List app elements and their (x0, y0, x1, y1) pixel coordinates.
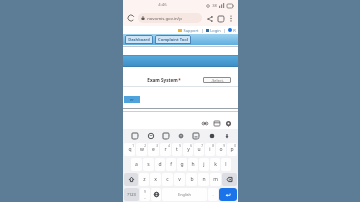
staticText: t (176, 146, 178, 153)
button[interactable]: t (172, 143, 182, 156)
button[interactable]: Shift (124, 173, 138, 186)
staticText: d (158, 161, 162, 168)
button[interactable]: er (124, 96, 140, 103)
staticText: 4:46 (158, 2, 167, 8)
button[interactable]: Complaint Tool (155, 35, 191, 44)
button[interactable]: Addresses (224, 119, 233, 128)
staticText: h (191, 161, 195, 168)
button[interactable]: Translate (191, 131, 200, 140)
button[interactable]: s (143, 158, 154, 171)
staticText: | (201, 28, 204, 33)
staticText: Support (183, 28, 199, 33)
staticText: Complaint Tool (158, 37, 188, 42)
staticText: x (154, 176, 157, 183)
button[interactable]: i (205, 143, 215, 156)
staticText: u (197, 146, 201, 153)
button[interactable]: 9 (140, 188, 150, 201)
staticText: Dashboard (128, 37, 150, 42)
button[interactable]: Payment methods (212, 119, 221, 128)
staticText: . (212, 192, 214, 198)
staticText: 9 (144, 190, 146, 194)
button[interactable]: c (162, 173, 173, 186)
button[interactable]: d (155, 158, 165, 171)
staticText: * (178, 77, 181, 83)
button[interactable]: z (139, 173, 149, 186)
button[interactable]: h (188, 158, 198, 171)
staticText: n (202, 176, 206, 183)
button[interactable]: f (166, 158, 176, 171)
staticText: y (187, 146, 190, 153)
staticText: 3 (156, 144, 158, 148)
button[interactable]: English (162, 188, 207, 201)
button[interactable]: Enter (219, 188, 237, 201)
button[interactable]: a (131, 158, 142, 171)
button[interactable]: r (160, 143, 171, 156)
staticText: b (190, 176, 194, 183)
button[interactable]: Change language (151, 188, 161, 201)
staticText: s (147, 161, 150, 168)
staticText: l (225, 161, 227, 168)
staticText: 9 (223, 144, 225, 148)
staticText: 8 (212, 144, 214, 148)
button[interactable]: p (227, 143, 237, 156)
staticText: 2 (144, 144, 146, 148)
button[interactable]: x (150, 173, 161, 186)
button[interactable]: Emoji (146, 131, 155, 140)
staticText: Exam System (147, 77, 178, 83)
staticText: a (135, 161, 138, 168)
staticText: ?123 (127, 192, 136, 197)
button[interactable]: More options (226, 14, 235, 23)
button[interactable]: Backspace (222, 173, 237, 186)
button[interactable]: u (194, 143, 204, 156)
button[interactable]: j (199, 158, 209, 171)
staticText: m (213, 176, 218, 183)
staticText: English (178, 192, 191, 197)
staticText: , (144, 194, 146, 200)
staticText: | (223, 28, 226, 33)
button[interactable]: q (124, 143, 135, 156)
staticText: 38 (212, 3, 217, 8)
staticText: R (233, 28, 236, 33)
staticText: 6 (190, 144, 192, 148)
button[interactable]: Clipboard (207, 131, 216, 140)
staticText: g (180, 161, 184, 168)
button[interactable]: b (186, 173, 197, 186)
staticText: 4 (168, 144, 170, 148)
button[interactable]: k (210, 158, 220, 171)
staticText: w (140, 146, 144, 153)
button[interactable]: y (183, 143, 193, 156)
button[interactable]: l (221, 158, 231, 171)
button[interactable]: v (174, 173, 185, 186)
button[interactable]: ?123 (124, 188, 139, 201)
button[interactable]: novomis.gov.in/p (138, 13, 202, 23)
button[interactable]: Settings (176, 131, 185, 140)
staticText: r (164, 146, 167, 153)
button[interactable]: Reload (126, 13, 136, 23)
staticText: z (143, 176, 146, 183)
button[interactable]: g (177, 158, 187, 171)
button[interactable]: Passwords (200, 119, 209, 128)
button[interactable]: w (136, 143, 147, 156)
staticText: 7 (201, 144, 203, 148)
button[interactable]: o (216, 143, 226, 156)
staticText: o (219, 146, 223, 153)
button[interactable]: GIF (161, 131, 170, 140)
staticText: er (130, 97, 134, 102)
staticText: v (178, 176, 181, 183)
button[interactable]: Voice input (222, 131, 231, 140)
button[interactable]: n (198, 173, 209, 186)
button[interactable]: Share (205, 14, 214, 23)
staticText: i (209, 146, 211, 153)
button[interactable]: Dashboard (125, 35, 153, 44)
staticText: Login (210, 28, 221, 33)
button[interactable]: -Select- (203, 77, 231, 83)
button[interactable]: Keyboard toolbar (130, 131, 139, 140)
staticText: -Select- (211, 78, 224, 83)
button[interactable]: e (148, 143, 159, 156)
staticText: f (170, 161, 172, 168)
button[interactable]: m (210, 173, 221, 186)
button[interactable]: Tabs (216, 14, 225, 23)
staticText: q (128, 146, 132, 153)
staticText: c (166, 176, 169, 183)
